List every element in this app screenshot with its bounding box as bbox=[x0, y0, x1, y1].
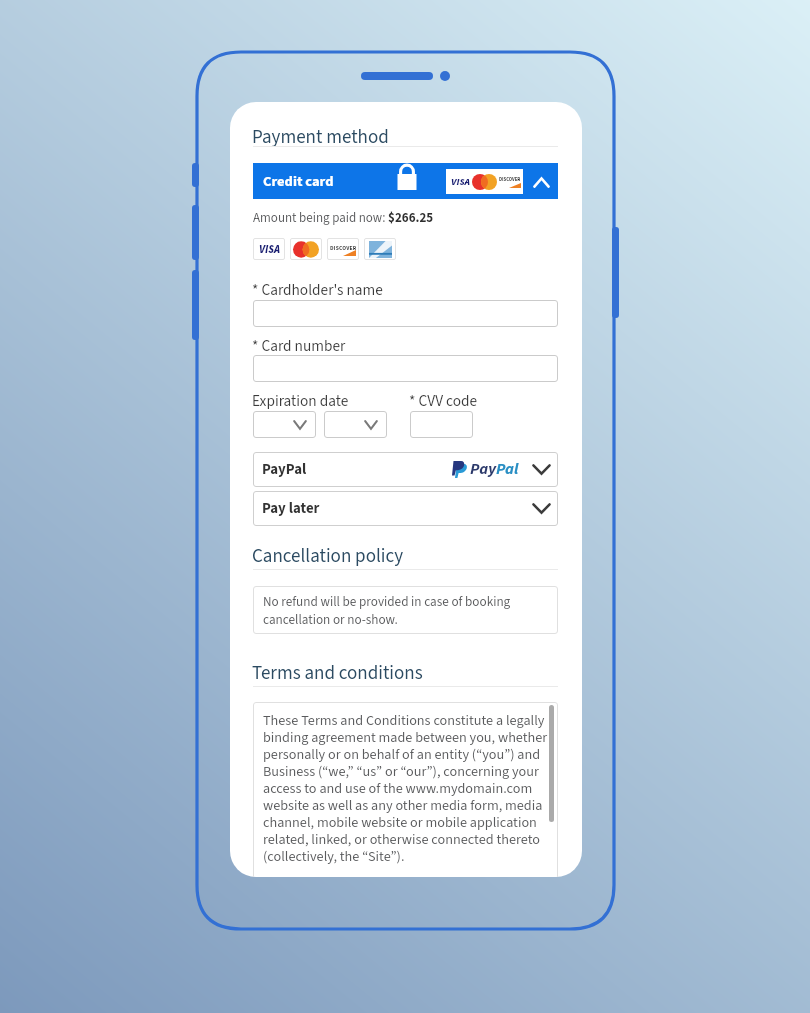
button[interactable]: Select bbox=[253, 411, 316, 438]
staticText: Cancellation policy bbox=[252, 543, 404, 570]
button[interactable]: PayPal bbox=[253, 452, 558, 487]
staticText: These Terms and Conditions constitute a … bbox=[263, 710, 550, 866]
staticText: Terms and conditions bbox=[252, 660, 423, 687]
staticText: Payment method bbox=[252, 124, 389, 151]
staticText: Expiration date bbox=[252, 390, 349, 412]
staticText: PayPal bbox=[470, 458, 519, 481]
staticText: * Cardholder's name bbox=[252, 279, 383, 301]
staticText: * CVV code bbox=[409, 390, 478, 412]
staticText: DISCOVER bbox=[330, 244, 357, 252]
button[interactable] bbox=[410, 411, 473, 438]
staticText: No refund will be provided in case of bo… bbox=[263, 592, 546, 629]
staticText: PayPal bbox=[262, 459, 307, 480]
button[interactable] bbox=[253, 355, 558, 382]
staticText: * Card number bbox=[252, 335, 346, 357]
staticText: Pay later bbox=[262, 498, 320, 519]
button[interactable]: Pay later bbox=[253, 491, 558, 526]
button[interactable]: Credit card bbox=[253, 163, 558, 199]
staticText: Credit card bbox=[263, 171, 334, 192]
staticText: Amount being paid now: $266.25 bbox=[253, 209, 434, 228]
staticText: DISCOVER bbox=[499, 176, 521, 183]
other: Collapse credit card section bbox=[533, 177, 550, 188]
staticText: VISA bbox=[451, 175, 470, 189]
button[interactable]: Select bbox=[324, 411, 387, 438]
staticText: VISA bbox=[259, 242, 280, 257]
button[interactable] bbox=[253, 300, 558, 327]
